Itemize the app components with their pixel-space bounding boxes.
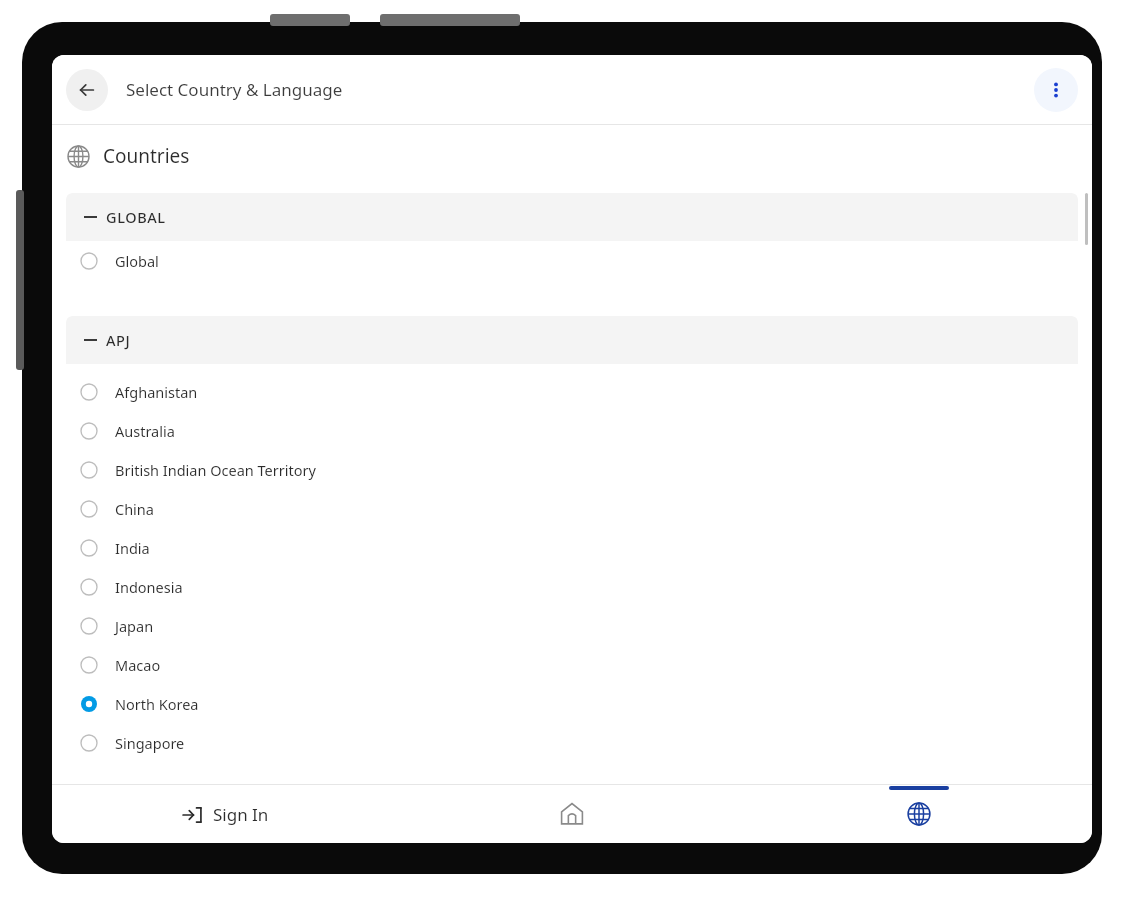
button[interactable]: Home (398, 785, 745, 843)
button[interactable]: Back (66, 69, 108, 111)
staticText: Japan (115, 616, 154, 636)
staticText: Select Country & Language (126, 78, 343, 101)
button[interactable]: Japan (66, 606, 1078, 645)
button[interactable]: Global (66, 241, 1078, 280)
button[interactable]: Singapore (66, 723, 1078, 762)
staticText: British Indian Ocean Territory (115, 460, 316, 480)
staticText: Sign In (213, 803, 269, 826)
button[interactable]: North Korea (66, 684, 1078, 723)
button[interactable]: Indonesia (66, 567, 1078, 606)
button[interactable]: China (66, 489, 1078, 528)
staticText: China (115, 499, 154, 519)
staticText: Australia (115, 421, 175, 441)
staticText: Singapore (115, 733, 185, 753)
button[interactable]: Macao (66, 645, 1078, 684)
button[interactable]: GLOBAL (66, 193, 1078, 241)
button[interactable]: Afghanistan (66, 372, 1078, 411)
button[interactable]: India (66, 528, 1078, 567)
staticText: North Korea (115, 694, 199, 714)
staticText: APJ (106, 330, 131, 350)
staticText: Countries (103, 143, 190, 169)
button[interactable]: British Indian Ocean Territory (66, 450, 1078, 489)
staticText: Macao (115, 655, 161, 675)
button[interactable]: Sign In (52, 785, 398, 843)
button[interactable]: APJ (66, 316, 1078, 364)
button[interactable]: Australia (66, 411, 1078, 450)
staticText: Global (115, 251, 159, 271)
button[interactable]: Country and language (745, 785, 1092, 843)
staticText: India (115, 538, 150, 558)
staticText: Indonesia (115, 577, 183, 597)
button[interactable]: More options (1034, 68, 1078, 112)
staticText: Afghanistan (115, 382, 198, 402)
staticText: GLOBAL (106, 207, 166, 227)
